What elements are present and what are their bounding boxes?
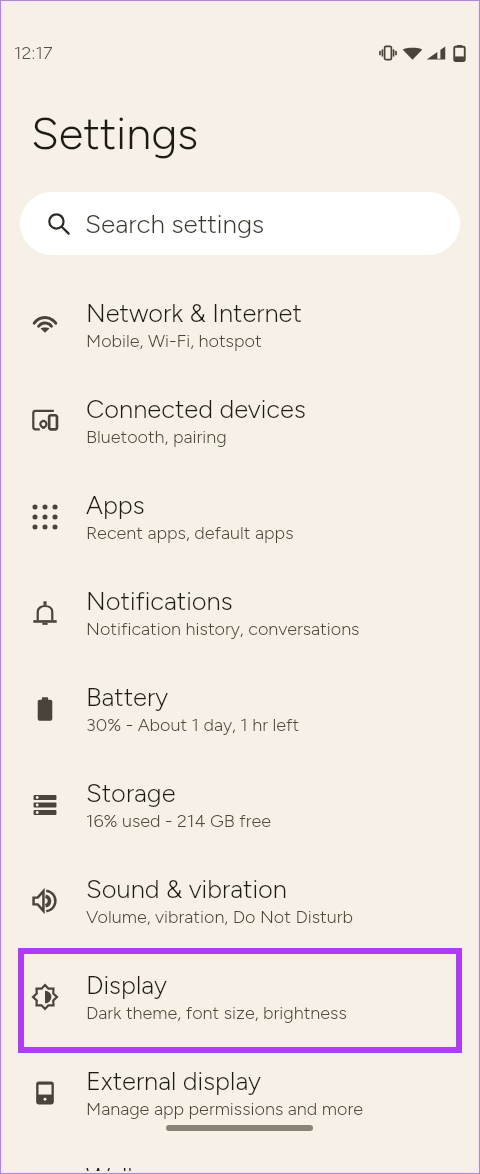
staticText: Recent apps, default apps <box>86 522 294 544</box>
button[interactable]: Notifications <box>0 565 480 661</box>
staticText: Network & Internet <box>86 298 302 329</box>
button[interactable]: Display <box>0 949 480 1045</box>
staticText: Search settings <box>85 208 265 239</box>
staticText: 16% used - 214 GB free <box>86 810 272 832</box>
staticText: Notification history, conversations <box>86 618 360 640</box>
staticText: Storage <box>86 778 176 809</box>
button[interactable]: Sound & vibration <box>0 853 480 949</box>
staticText: Notifications <box>86 586 233 617</box>
button[interactable]: Search settings <box>20 192 460 255</box>
staticText: Mobile, Wi-Fi, hotspot <box>86 330 262 352</box>
staticText: External display <box>86 1066 261 1097</box>
button[interactable]: Wallpaper <box>0 1141 480 1174</box>
button[interactable]: External display <box>0 1045 480 1141</box>
staticText: Connected devices <box>86 394 306 425</box>
staticText: Manage app permissions and more <box>86 1098 363 1120</box>
staticText: 30% - About 1 day, 1 hr left <box>86 714 300 736</box>
staticText: Volume, vibration, Do Not Disturb <box>86 906 353 928</box>
staticText: Wallpaper <box>86 1162 198 1174</box>
staticText: Dark theme, font size, brightness <box>86 1002 347 1024</box>
button[interactable]: Apps <box>0 469 480 565</box>
button[interactable]: Storage <box>0 757 480 853</box>
staticText: Apps <box>86 490 145 521</box>
button[interactable]: Battery <box>0 661 480 757</box>
staticText: Battery <box>86 682 169 713</box>
staticText: Settings <box>31 106 199 160</box>
button[interactable]: Connected devices <box>0 373 480 469</box>
staticText: Display <box>86 970 167 1001</box>
button[interactable]: Network & Internet <box>0 277 480 373</box>
staticText: Bluetooth, pairing <box>86 426 227 448</box>
staticText: Sound & vibration <box>86 874 287 905</box>
staticText: 12:17 <box>14 42 53 64</box>
